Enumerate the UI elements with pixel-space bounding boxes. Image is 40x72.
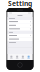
- button[interactable]: [7, 24, 32, 27]
- staticText: Setting: [8, 0, 32, 8]
- button[interactable]: [7, 37, 32, 41]
- button[interactable]: Tab: [20, 56, 26, 59]
- button[interactable]: Tab: [14, 56, 20, 59]
- button[interactable]: [7, 34, 32, 37]
- button[interactable]: [7, 20, 32, 24]
- button[interactable]: [7, 27, 32, 31]
- button[interactable]: Tab: [26, 56, 32, 59]
- button[interactable]: Tab: [8, 56, 14, 59]
